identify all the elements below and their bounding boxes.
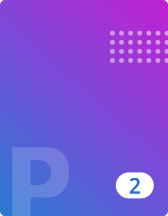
staticText: 2 xyxy=(129,171,141,199)
button[interactable]: 2 xyxy=(116,172,154,198)
